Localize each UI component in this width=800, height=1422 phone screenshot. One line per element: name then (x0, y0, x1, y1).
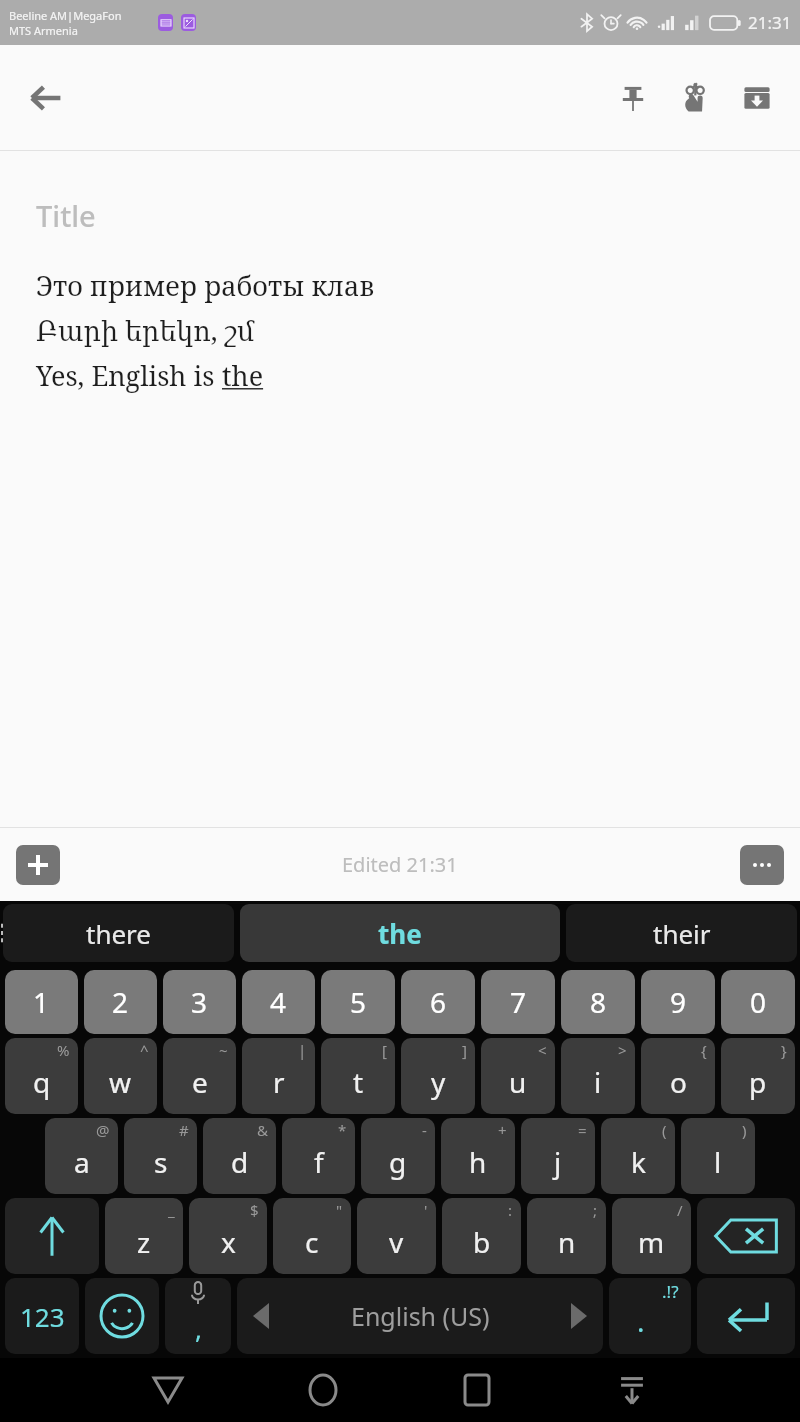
staticText: Title (36, 196, 96, 235)
staticText: Это пример работы клав (36, 267, 375, 304)
button[interactable]: there (3, 904, 234, 962)
button[interactable]: * (282, 1118, 355, 1194)
staticText: # (179, 1120, 189, 1140)
button[interactable]: 9 (641, 970, 715, 1034)
button[interactable]: / (612, 1198, 691, 1274)
button[interactable]: Back (16, 68, 76, 128)
button[interactable]: # (124, 1118, 197, 1194)
staticText: ( (662, 1120, 667, 1140)
button[interactable]: Enter (697, 1278, 795, 1354)
button[interactable]: Add (16, 845, 60, 885)
button[interactable]: 8 (561, 970, 635, 1034)
staticText: ] (462, 1040, 467, 1060)
staticText: ^ (140, 1040, 149, 1060)
staticText: Edited 21:31 (342, 851, 458, 878)
staticText: q (33, 1063, 51, 1101)
button[interactable]: " (273, 1198, 351, 1274)
staticText: there (86, 916, 152, 951)
staticText: .!? (662, 1280, 679, 1303)
staticText: k (631, 1143, 646, 1181)
staticText: o (670, 1063, 687, 1101)
button[interactable]: Archive (726, 67, 788, 129)
button[interactable]: 4 (242, 970, 315, 1034)
staticText: s (154, 1143, 168, 1181)
staticText: 9 (670, 983, 687, 1021)
staticText: [ (382, 1040, 387, 1060)
staticText: 0 (750, 983, 767, 1021)
button[interactable]: - (361, 1118, 435, 1194)
staticText: , (195, 1311, 202, 1346)
staticText: l (714, 1143, 722, 1181)
staticText: v (389, 1223, 404, 1261)
staticText: % (57, 1040, 70, 1060)
staticText: / (677, 1200, 683, 1220)
button[interactable]: More options (740, 845, 784, 885)
button[interactable]: 1 (5, 970, 78, 1034)
button[interactable]: Cut (664, 67, 726, 129)
staticText: } (781, 1040, 787, 1060)
staticText: n (558, 1223, 576, 1261)
button[interactable]: 7 (481, 970, 555, 1034)
button[interactable]: ] (401, 1038, 475, 1114)
button[interactable]: ^ (84, 1038, 157, 1114)
staticText: < (538, 1040, 547, 1060)
button[interactable]: } (721, 1038, 795, 1114)
button[interactable]: 0 (721, 970, 795, 1034)
button[interactable]: > (561, 1038, 635, 1114)
button[interactable]: ; (527, 1198, 606, 1274)
staticText: Yes, English is (36, 357, 222, 394)
staticText: r (273, 1063, 285, 1101)
button[interactable]: & (203, 1118, 276, 1194)
button[interactable]: < (481, 1038, 555, 1114)
button[interactable]: ' (357, 1198, 436, 1274)
button[interactable]: $ (189, 1198, 267, 1274)
staticText: MTS Armenia (9, 23, 78, 38)
button[interactable]: ( (601, 1118, 675, 1194)
staticText: English (US) (351, 1299, 490, 1333)
button[interactable]: 3 (163, 970, 236, 1034)
staticText: the (378, 916, 422, 951)
button[interactable]: | (242, 1038, 315, 1114)
staticText: their (653, 916, 711, 951)
button[interactable]: 2 (84, 970, 157, 1034)
staticText: Բարի երեկո, շմ (36, 312, 255, 349)
button[interactable]: : (442, 1198, 521, 1274)
button[interactable]: Period and punctuation (609, 1278, 691, 1354)
button[interactable]: + (441, 1118, 515, 1194)
button[interactable]: = (521, 1118, 595, 1194)
button[interactable]: the (240, 904, 560, 962)
staticText: $ (250, 1200, 259, 1220)
staticText: Beeline AM|MegaFon (9, 8, 122, 23)
staticText: x (221, 1223, 236, 1261)
staticText: t (353, 1063, 364, 1101)
button[interactable]: Backspace (697, 1198, 795, 1274)
button[interactable]: their (566, 904, 797, 962)
staticText: - (422, 1120, 427, 1140)
staticText: ; (593, 1200, 598, 1220)
button[interactable]: Shift (5, 1198, 99, 1274)
staticText: c (305, 1223, 319, 1261)
button[interactable]: English (US) (237, 1278, 603, 1354)
button[interactable]: 123 (5, 1278, 79, 1354)
button[interactable]: Home (295, 1362, 351, 1418)
button[interactable]: 5 (321, 970, 395, 1034)
button[interactable]: Recents (449, 1362, 505, 1418)
staticText: ~ (219, 1040, 228, 1060)
staticText: the (222, 357, 264, 394)
button[interactable]: Back (140, 1362, 196, 1418)
button[interactable]: Emoji (85, 1278, 159, 1354)
button[interactable]: 6 (401, 970, 475, 1034)
button[interactable]: @ (45, 1118, 118, 1194)
staticText: f (314, 1143, 324, 1181)
button[interactable]: [ (321, 1038, 395, 1114)
button[interactable]: _ (105, 1198, 183, 1274)
button[interactable]: ~ (163, 1038, 236, 1114)
staticText: 4 (270, 983, 287, 1021)
staticText: z (137, 1223, 151, 1261)
button[interactable]: Comma and voice input (165, 1278, 231, 1354)
button[interactable]: ) (681, 1118, 755, 1194)
button[interactable]: Hide keyboard (604, 1362, 660, 1418)
button[interactable]: % (5, 1038, 78, 1114)
button[interactable]: Pin (602, 67, 664, 129)
button[interactable]: { (641, 1038, 715, 1114)
